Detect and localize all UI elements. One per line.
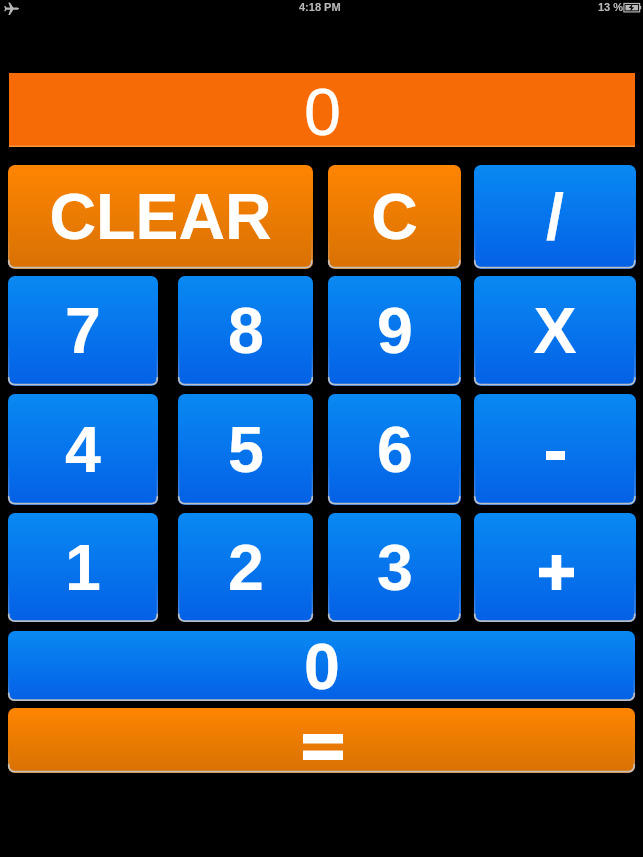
button[interactable]: C (328, 165, 461, 269)
button[interactable]: 1 (8, 513, 158, 622)
other: Airplane mode (4, 0, 20, 16)
other: Battery 13 percent charging (623, 3, 642, 13)
staticText: / (546, 181, 564, 253)
staticText: 8 (228, 295, 264, 367)
button[interactable]: Multiply (474, 276, 636, 386)
button[interactable]: 2 (178, 513, 313, 622)
staticText: 1 (65, 532, 101, 604)
button[interactable]: Display shows 0 (9, 73, 635, 147)
button[interactable]: Minus (474, 394, 636, 505)
staticText: 13 % (598, 1, 624, 13)
staticText: 3 (377, 532, 413, 604)
staticText: 4:18 PM (299, 1, 341, 13)
staticText: 6 (377, 414, 413, 486)
button[interactable]: 8 (178, 276, 313, 386)
button[interactable]: 3 (328, 513, 461, 622)
button[interactable]: Equals (8, 708, 635, 773)
staticText: 7 (65, 295, 101, 367)
button[interactable]: 4 (8, 394, 158, 505)
button[interactable]: 0 (8, 631, 635, 701)
button[interactable]: 9 (328, 276, 461, 386)
staticText: C (371, 181, 418, 253)
button[interactable]: 6 (328, 394, 461, 505)
button[interactable]: CLEAR (8, 165, 313, 269)
staticText: X (533, 295, 577, 367)
staticText: 0 (304, 75, 341, 149)
button[interactable]: Divide (474, 165, 636, 269)
button[interactable]: Plus (474, 513, 636, 622)
staticText: 5 (228, 414, 264, 486)
button[interactable]: 7 (8, 276, 158, 386)
staticText: 9 (377, 295, 413, 367)
button[interactable]: 5 (178, 394, 313, 505)
staticText: 2 (228, 532, 264, 604)
staticText: CLEAR (49, 181, 272, 253)
staticText: 4 (65, 414, 101, 486)
staticText: 0 (304, 631, 340, 701)
